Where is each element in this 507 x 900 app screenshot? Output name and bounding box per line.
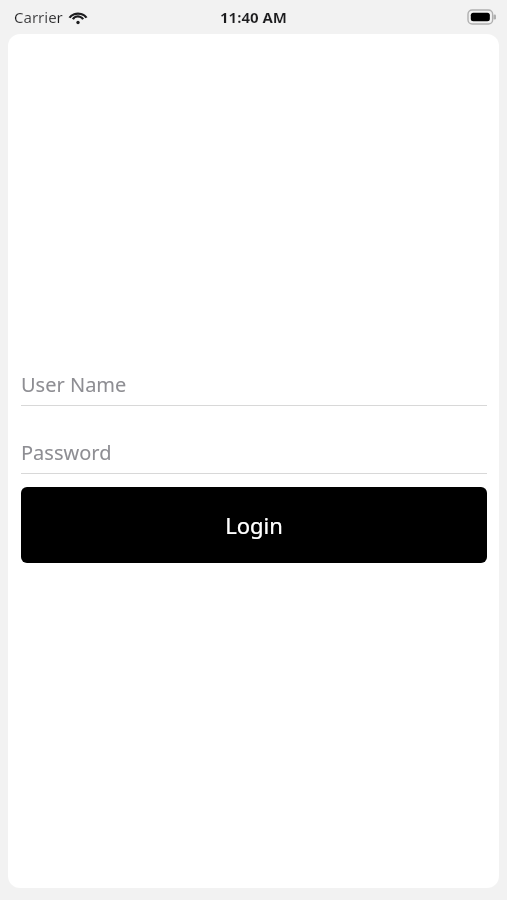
staticText: 11:40 AM (220, 7, 287, 27)
button[interactable]: Password (21, 432, 487, 474)
button[interactable]: User Name (21, 364, 487, 406)
staticText: User Name (21, 371, 127, 398)
staticText: Carrier (14, 7, 63, 27)
staticText: Password (21, 439, 112, 466)
staticText: Login (225, 510, 283, 540)
button[interactable]: Login (21, 487, 487, 563)
